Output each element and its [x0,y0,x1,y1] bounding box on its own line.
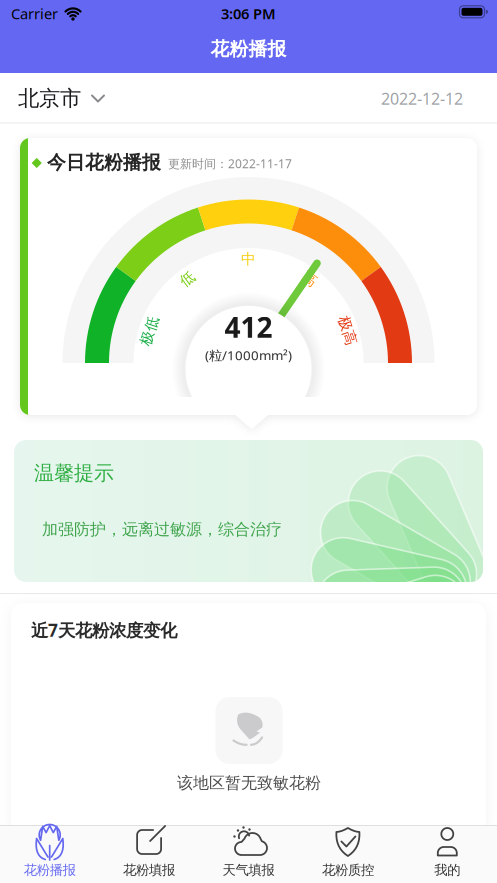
staticText: 花粉播报 [210,37,286,60]
staticText: 3:06 PM [221,4,276,23]
staticText: 我的 [434,862,460,878]
button[interactable]: 花粉填报 [100,825,199,883]
staticText: 低 [180,270,195,288]
staticText: 412 [224,308,272,346]
staticText: 今日花粉播报 [47,151,161,174]
staticText: 极高 [332,322,362,340]
staticText: 中 [241,250,256,268]
staticText: 近7天花粉浓度变化 [31,618,177,641]
button[interactable]: 花粉播报 [0,825,99,883]
staticText: 温馨提示 [34,461,114,485]
staticText: 加强防护，远离过敏源，综合治疗 [42,520,282,539]
button[interactable]: 花粉质控 [298,825,397,883]
staticText: 花粉质控 [322,862,374,878]
staticText: 2022-12-12 [381,88,463,109]
staticText: Carrier [11,4,58,23]
button[interactable]: 我的 [398,825,497,883]
staticText: 花粉播报 [24,862,76,878]
staticText: 极低 [135,322,165,340]
staticText: 该地区暂无致敏花粉 [177,773,321,793]
staticText: 天气填报 [222,862,274,878]
button[interactable]: 北京市 [18,85,105,112]
staticText: 高 [302,270,317,288]
staticText: 北京市 [18,85,81,112]
button[interactable]: 天气填报 [199,825,298,883]
staticText: 花粉填报 [123,862,175,878]
staticText: 更新时间：2022-11-17 [168,155,292,171]
staticText: (粒/1000mm²) [205,346,292,364]
